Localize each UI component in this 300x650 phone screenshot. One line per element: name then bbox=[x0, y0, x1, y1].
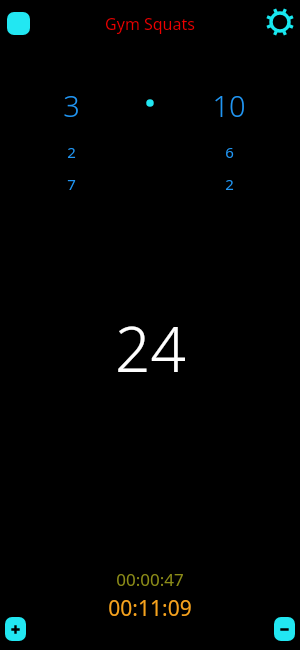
staticText: 2 bbox=[67, 142, 76, 162]
button[interactable]: Gym Squats bbox=[95, 11, 205, 37]
button[interactable]: Decrement bbox=[274, 617, 295, 641]
button[interactable]: 10 bbox=[203, 86, 255, 122]
button[interactable]: Stop bbox=[7, 12, 30, 35]
staticText: 24 bbox=[115, 306, 186, 390]
staticText: 3 bbox=[63, 86, 80, 122]
staticText: 10 bbox=[212, 86, 246, 122]
button[interactable]: Settings bbox=[264, 6, 296, 38]
button[interactable]: Increment bbox=[5, 617, 26, 641]
button[interactable]: 00:00:47 bbox=[0, 567, 300, 591]
button[interactable]: 24 bbox=[0, 305, 300, 391]
button[interactable]: 6 bbox=[203, 140, 255, 164]
staticText: 00:11:09 bbox=[108, 594, 192, 622]
button[interactable]: 2 bbox=[45, 140, 97, 164]
button[interactable]: 3 bbox=[45, 86, 97, 122]
staticText: 6 bbox=[225, 142, 234, 162]
button[interactable]: 00:11:09 bbox=[0, 594, 300, 622]
button[interactable]: 2 bbox=[203, 172, 255, 196]
button[interactable]: 7 bbox=[45, 172, 97, 196]
staticText: 7 bbox=[67, 174, 76, 194]
staticText: 2 bbox=[225, 174, 234, 194]
staticText: 00:00:47 bbox=[116, 568, 184, 591]
staticText: Gym Squats bbox=[105, 13, 195, 35]
